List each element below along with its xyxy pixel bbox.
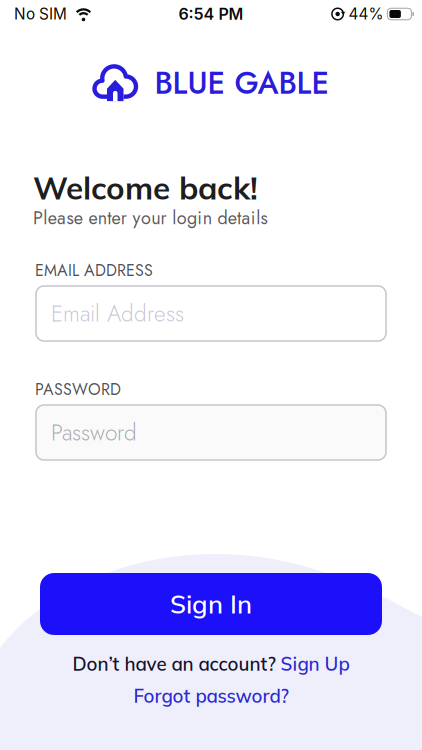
staticText: PASSWORD	[35, 378, 121, 401]
staticText: Welcome back!	[33, 168, 258, 207]
button[interactable]: Sign Up	[280, 652, 349, 675]
staticText: EMAIL ADDRESS	[35, 259, 153, 282]
staticText: Forgot password?	[133, 684, 288, 707]
button[interactable]: Forgot password?	[133, 684, 288, 707]
staticText: Sign Up	[280, 652, 349, 675]
staticText: 44%	[348, 5, 383, 23]
staticText: No SIM	[14, 5, 67, 23]
button[interactable]: Sign In	[40, 573, 382, 635]
staticText: Don’t have an account?	[72, 652, 275, 675]
staticText: Please enter your login details	[33, 205, 267, 231]
staticText: Email Address	[51, 297, 184, 330]
staticText: Sign In	[170, 588, 252, 620]
staticText: 6:54 PM	[178, 4, 243, 24]
staticText: BLUE GABLE	[154, 61, 329, 105]
button[interactable]: Email Address	[36, 286, 386, 341]
staticText: Password	[51, 416, 137, 449]
button[interactable]: Password	[36, 405, 386, 460]
